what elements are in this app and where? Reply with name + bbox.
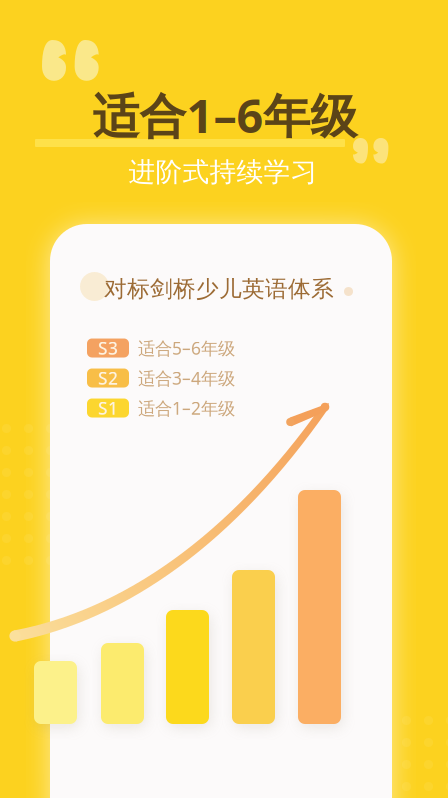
staticText: S3 bbox=[98, 336, 118, 359]
staticText: 适合1–6年级 bbox=[92, 84, 357, 146]
staticText: 进阶式持续学习 bbox=[128, 156, 317, 188]
staticText: S1 bbox=[98, 396, 118, 419]
staticText: 适合1–2年级 bbox=[138, 396, 235, 419]
staticText: 适合5–6年级 bbox=[138, 336, 235, 359]
staticText: S2 bbox=[98, 366, 118, 389]
staticText: 适合3–4年级 bbox=[138, 366, 235, 389]
staticText: 对标剑桥少儿英语体系 bbox=[104, 275, 334, 303]
